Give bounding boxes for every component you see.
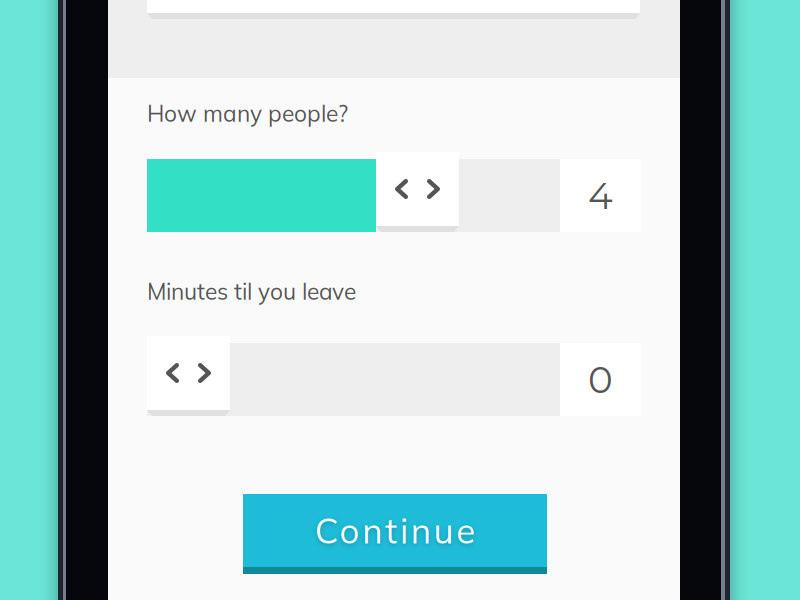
staticText: Continue xyxy=(315,509,475,552)
staticText: Minutes til you leave xyxy=(147,277,356,305)
staticText: 4 xyxy=(588,173,613,218)
button[interactable]: Continue xyxy=(243,494,547,574)
staticText: 0 xyxy=(588,357,613,402)
button[interactable]: Change value, currently 0 xyxy=(147,336,230,416)
staticText: How many people? xyxy=(147,99,348,127)
button[interactable]: Change value, currently 4 xyxy=(376,152,459,232)
